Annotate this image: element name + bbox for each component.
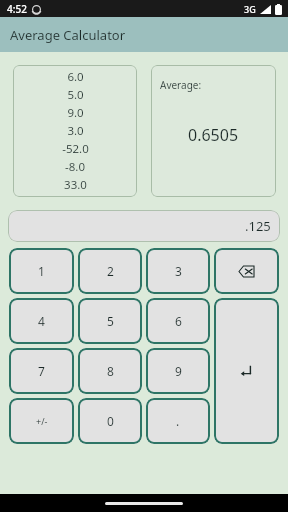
button[interactable]: 7 — [9, 348, 74, 394]
staticText: -52.0 — [62, 141, 89, 157]
staticText: . — [176, 413, 180, 429]
staticText: 5.0 — [67, 87, 84, 103]
button[interactable]: +/- — [9, 398, 74, 444]
staticText: 4 — [38, 313, 45, 329]
staticText: +/- — [36, 415, 48, 427]
staticText: 8 — [107, 363, 114, 379]
staticText: 4:52 — [7, 2, 27, 16]
staticText: 9 — [175, 363, 182, 379]
staticText: Average Calculator — [10, 26, 126, 44]
staticText: 9.0 — [67, 105, 84, 121]
staticText: 6 — [175, 313, 182, 329]
button[interactable]: Backspace — [214, 248, 279, 294]
staticText: .125 — [245, 217, 271, 235]
button[interactable]: 6 — [146, 298, 210, 344]
button[interactable]: 1 — [9, 248, 74, 294]
staticText: 2 — [107, 263, 114, 279]
button[interactable]: 4 — [9, 298, 74, 344]
staticText: 1 — [38, 263, 45, 279]
staticText: 33.0 — [64, 177, 87, 193]
button[interactable]: . — [146, 398, 210, 444]
staticText: 5 — [107, 313, 114, 329]
staticText: 3.0 — [67, 123, 84, 139]
button[interactable]: 9 — [146, 348, 210, 394]
staticText: 6.0 — [67, 69, 84, 85]
staticText: -8.0 — [65, 159, 85, 175]
staticText: 3G — [244, 3, 256, 15]
button[interactable]: 6.0 — [13, 65, 137, 197]
button[interactable]: 3 — [146, 248, 210, 294]
button[interactable]: 8 — [78, 348, 142, 394]
staticText: 3 — [175, 263, 182, 279]
button[interactable]: 2 — [78, 248, 142, 294]
button[interactable]: .125 — [8, 210, 280, 242]
staticText: 7 — [38, 363, 45, 379]
button[interactable]: Enter — [214, 298, 279, 444]
staticText: 8.5 — [67, 195, 84, 197]
button[interactable]: 5 — [78, 298, 142, 344]
staticText: Average: — [160, 78, 202, 92]
staticText: 0 — [107, 413, 114, 429]
button[interactable]: Average: — [151, 65, 276, 197]
button[interactable]: 0 — [78, 398, 142, 444]
staticText: 0.6505 — [188, 124, 239, 146]
